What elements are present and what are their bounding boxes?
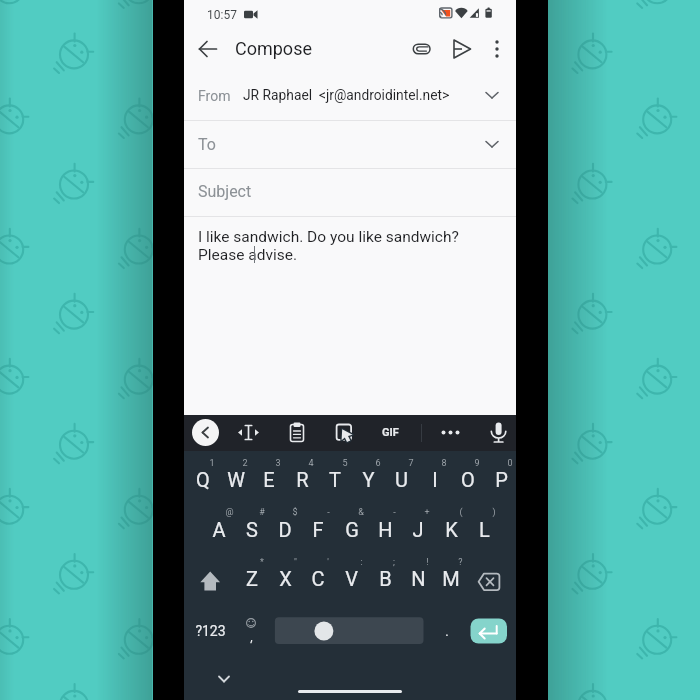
button[interactable]: R — [282, 465, 322, 493]
staticText: 5 — [342, 458, 348, 469]
button[interactable]: Q — [183, 465, 223, 493]
button[interactable]: H — [365, 515, 405, 543]
staticText: Z — [246, 567, 258, 590]
staticText: Y — [362, 468, 375, 491]
staticText: T — [329, 468, 341, 491]
button[interactable]: Clipboard — [283, 419, 310, 446]
button[interactable]: X — [265, 564, 305, 592]
button[interactable]: W — [216, 465, 256, 493]
button[interactable]: 4 — [291, 449, 331, 477]
staticText: K — [445, 518, 458, 541]
button[interactable]: A — [199, 515, 239, 543]
button[interactable]: Subject — [184, 168, 516, 216]
button[interactable]: . — [427, 617, 467, 645]
staticText: O — [461, 468, 475, 491]
button[interactable]: L — [464, 515, 504, 543]
button[interactable]: Stickers — [331, 419, 358, 446]
button[interactable]: - — [308, 498, 348, 526]
button[interactable]: ?123 — [190, 617, 230, 645]
button[interactable]: Voice input — [485, 419, 512, 446]
button[interactable]: I — [415, 465, 455, 493]
button[interactable]: Send — [447, 35, 475, 63]
staticText: E — [263, 468, 275, 491]
button[interactable]: $ — [275, 498, 315, 526]
button[interactable]: 0 — [490, 449, 530, 477]
button[interactable]: : — [341, 548, 381, 576]
staticText: : — [360, 557, 363, 568]
button[interactable]: & — [341, 498, 381, 526]
button[interactable]: B — [365, 564, 405, 592]
button[interactable]: ! — [407, 548, 447, 576]
staticText: @ — [225, 507, 234, 518]
button[interactable]: ; — [374, 548, 414, 576]
staticText: ? — [458, 557, 463, 568]
button[interactable]: S — [232, 515, 272, 543]
staticText: 10:57 — [207, 8, 237, 22]
button[interactable]: D — [265, 515, 305, 543]
staticText: GIF — [382, 426, 399, 439]
button[interactable]: Back — [194, 35, 222, 63]
button[interactable]: G — [332, 515, 372, 543]
button[interactable]: * — [242, 548, 282, 576]
button[interactable]: ( — [441, 498, 481, 526]
staticText: A — [212, 518, 226, 541]
button[interactable]: Expand — [484, 87, 500, 103]
button[interactable]: U — [381, 465, 421, 493]
button[interactable]: GIF — [377, 419, 404, 446]
button[interactable]: @ — [209, 498, 249, 526]
button[interactable]: # — [242, 498, 282, 526]
button[interactable]: F — [298, 515, 338, 543]
button[interactable]: Z — [232, 564, 272, 592]
button[interactable]: ' — [308, 548, 348, 576]
button[interactable]: N — [398, 564, 438, 592]
staticText: * — [260, 557, 264, 568]
button[interactable]: More options — [483, 35, 511, 63]
button[interactable]: 7 — [391, 449, 431, 477]
button[interactable]: 9 — [457, 449, 497, 477]
staticText: ; — [393, 557, 395, 568]
button[interactable]: More — [437, 419, 464, 446]
button[interactable]: M — [431, 564, 471, 592]
button[interactable]: 2 — [225, 449, 265, 477]
staticText: V — [345, 567, 358, 590]
button[interactable]: 1 — [192, 449, 232, 477]
button[interactable]: From — [184, 70, 516, 120]
button[interactable]: ) — [474, 498, 514, 526]
staticText: + — [424, 507, 430, 518]
button[interactable]: V — [331, 564, 371, 592]
button[interactable]: Collapse toolbar — [192, 419, 219, 446]
staticText: & — [358, 507, 364, 518]
button[interactable]: E — [249, 465, 289, 493]
staticText: JR Raphael <jr@androidintel.net> — [243, 87, 450, 103]
button[interactable]: ? — [440, 548, 480, 576]
button[interactable]: To — [184, 120, 516, 168]
button[interactable]: " — [275, 548, 315, 576]
button[interactable]: , — [231, 623, 271, 651]
button[interactable]: + — [407, 498, 447, 526]
button[interactable]: P — [481, 465, 521, 493]
staticText: To — [198, 135, 216, 154]
button[interactable]: 3 — [258, 449, 298, 477]
button[interactable]: 6 — [358, 449, 398, 477]
button[interactable]: 5 — [325, 449, 365, 477]
button[interactable]: Attach file — [407, 35, 435, 63]
staticText: S — [246, 518, 258, 541]
button[interactable]: K — [431, 515, 471, 543]
button[interactable]: C — [298, 564, 338, 592]
button[interactable]: J — [398, 515, 438, 543]
button[interactable]: Expand — [484, 136, 500, 152]
button[interactable]: Text cursor control — [235, 419, 262, 446]
staticText: ( — [459, 507, 463, 518]
staticText: ?123 — [195, 623, 226, 639]
staticText: 6 — [375, 458, 381, 469]
button[interactable]: I like sandwich. Do you like sandwich? — [184, 216, 516, 415]
button[interactable]: T — [315, 465, 355, 493]
staticText: L — [479, 518, 490, 541]
staticText: " — [294, 557, 297, 568]
staticText: 1 — [209, 458, 215, 469]
button[interactable]: Y — [348, 465, 388, 493]
staticText: 2 — [242, 458, 248, 469]
button[interactable]: O — [448, 465, 488, 493]
button[interactable]: - — [374, 498, 414, 526]
button[interactable]: 8 — [424, 449, 464, 477]
